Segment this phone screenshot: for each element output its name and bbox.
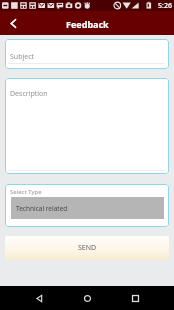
button[interactable]: Home: [75, 286, 99, 310]
staticText: Description: [10, 89, 48, 99]
staticText: Technical related: [16, 204, 68, 213]
staticText: Subject: [10, 52, 35, 62]
button[interactable]: Back: [0, 11, 24, 35]
staticText: Feedback: [66, 18, 109, 30]
button[interactable]: Subject: [5, 39, 169, 69]
staticText: SEND: [78, 243, 97, 253]
button[interactable]: Description: [5, 78, 169, 174]
button[interactable]: Select Type: [5, 184, 169, 227]
button[interactable]: Back: [27, 286, 51, 310]
button[interactable]: Recent apps: [123, 286, 147, 310]
button[interactable]: SEND: [5, 236, 169, 260]
staticText: 5:26: [158, 1, 172, 11]
staticText: Select Type: [10, 188, 42, 196]
